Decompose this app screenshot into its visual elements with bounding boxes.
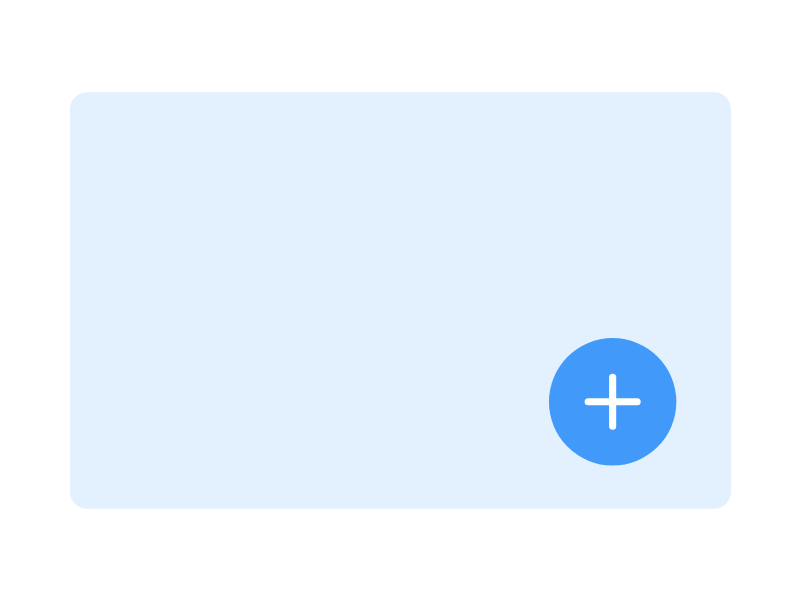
button[interactable]: Add xyxy=(549,338,676,465)
